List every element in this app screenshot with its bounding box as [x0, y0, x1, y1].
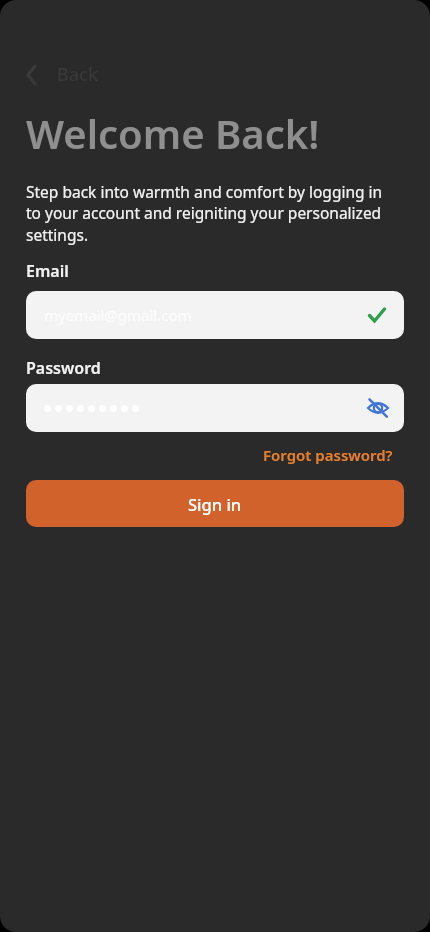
button[interactable]: Back [26, 62, 98, 87]
button[interactable]: Forgot password? [263, 445, 393, 465]
staticText: Welcome Back! [26, 106, 320, 160]
button[interactable] [44, 384, 386, 432]
staticText: myemail@gmail.com [44, 305, 192, 325]
staticText: Sign in [188, 493, 242, 515]
staticText: Back [57, 62, 98, 87]
button[interactable]: myemail@gmail.com [44, 291, 386, 339]
staticText: Step back into warmth and comfort by log… [26, 181, 383, 246]
staticText: Password [26, 357, 101, 379]
button[interactable]: Sign in [26, 480, 404, 527]
button[interactable] [366, 396, 390, 420]
staticText: Email [26, 260, 69, 282]
